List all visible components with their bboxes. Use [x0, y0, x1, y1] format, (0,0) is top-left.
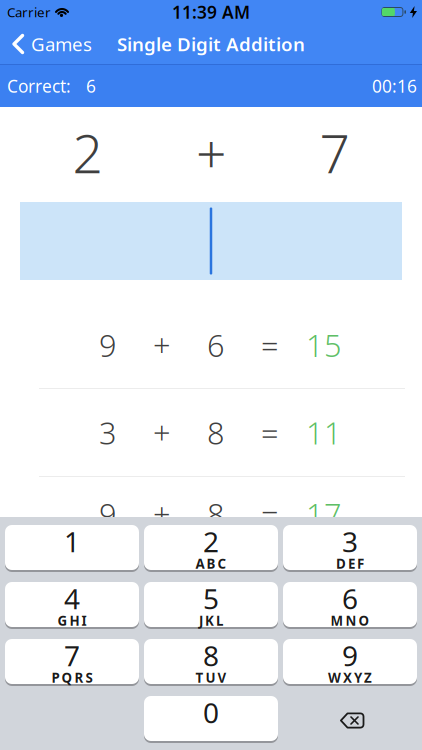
button[interactable]: Games — [12, 32, 92, 56]
staticText: + — [153, 494, 171, 534]
staticText: + — [153, 412, 171, 453]
staticText: 9 — [99, 325, 117, 365]
staticText: TUV — [195, 669, 226, 686]
staticText: 1 — [64, 523, 80, 560]
staticText: = — [261, 325, 279, 365]
button[interactable]: 1 — [5, 525, 139, 572]
staticText: 6 — [342, 580, 358, 617]
staticText: JKL — [199, 612, 223, 629]
staticText: + — [153, 325, 171, 365]
button[interactable]: 3 — [283, 525, 417, 572]
staticText: PQRS — [51, 669, 92, 686]
staticText: 8 — [207, 494, 225, 534]
button[interactable]: Answer — [20, 202, 402, 280]
button[interactable]: 9 — [283, 639, 417, 686]
staticText: = — [261, 494, 279, 534]
staticText: 8 — [203, 637, 219, 674]
staticText: 0 — [203, 694, 219, 731]
staticText: 11:39 AM — [172, 0, 250, 23]
staticText: 2 — [203, 523, 219, 560]
staticText: + — [196, 117, 226, 188]
button[interactable]: 0 — [144, 696, 278, 743]
staticText: ABC — [195, 555, 226, 572]
button[interactable]: 7 — [5, 639, 139, 686]
staticText: 17 — [306, 494, 342, 534]
staticText: GHI — [57, 612, 86, 629]
staticText: 7 — [319, 117, 349, 188]
staticText: MNO — [330, 612, 369, 629]
staticText: 6 — [207, 325, 225, 365]
staticText: Single Digit Addition — [117, 32, 305, 56]
staticText: 3 — [99, 412, 117, 453]
staticText: Games — [31, 32, 92, 56]
staticText: 15 — [306, 325, 342, 365]
staticText: 9 — [342, 637, 358, 674]
button[interactable]: 5 — [144, 582, 278, 629]
staticText: 4 — [64, 580, 80, 617]
button[interactable]: 4 — [5, 582, 139, 629]
button[interactable]: 2 — [144, 525, 278, 572]
staticText: WXYZ — [328, 669, 372, 686]
button[interactable]: Delete — [283, 696, 417, 743]
button[interactable]: 6 — [283, 582, 417, 629]
staticText: 00:16 — [372, 74, 417, 97]
button[interactable]: 8 — [144, 639, 278, 686]
staticText: 2 — [72, 117, 102, 188]
staticText: 6 — [86, 74, 96, 97]
staticText: 9 — [99, 494, 117, 534]
staticText: 5 — [203, 580, 219, 617]
staticText: 8 — [207, 412, 225, 453]
staticText: DEF — [336, 555, 364, 572]
staticText: = — [261, 412, 279, 453]
staticText: Correct: — [7, 74, 71, 97]
staticText: 7 — [64, 637, 80, 674]
staticText: Carrier — [7, 3, 51, 21]
staticText: 3 — [342, 523, 358, 560]
staticText: 11 — [306, 412, 342, 453]
